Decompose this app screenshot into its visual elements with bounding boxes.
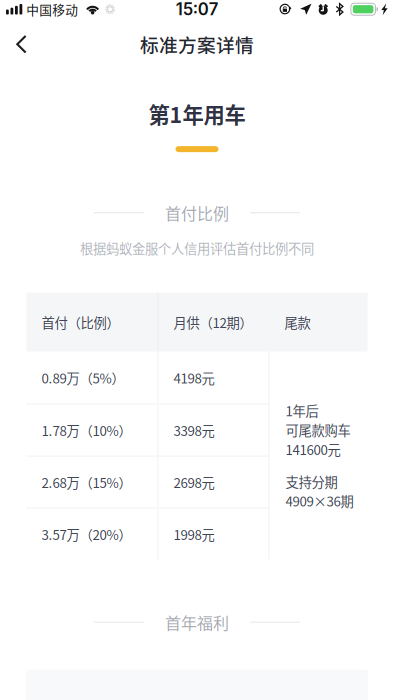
staticText: 首付（比例） [41, 312, 119, 332]
staticText: 1.78万（10%） [41, 420, 131, 440]
staticText: 支持分期 [285, 472, 337, 491]
staticText: 首付比例 [165, 201, 229, 224]
staticText: 根据蚂蚁金服个人信用评估首付比例不同 [80, 238, 314, 258]
staticText: 月供（12期） [173, 312, 252, 332]
staticText: 141600元 [285, 439, 340, 459]
staticText: 首年福利 [165, 611, 229, 634]
staticText: 4198元 [173, 368, 214, 387]
staticText: 15:07 [176, 0, 219, 19]
staticText: 3.57万（20%） [41, 524, 131, 544]
staticText: 标准方案详情 [140, 31, 254, 58]
staticText: 可尾款购车 [285, 420, 350, 439]
staticText: 2698元 [173, 472, 214, 492]
staticText: 3398元 [173, 420, 214, 440]
staticText: 尾款 [284, 312, 310, 332]
staticText: 2.68万（15%） [41, 472, 131, 492]
staticText: 第1年用车 [148, 98, 245, 129]
staticText: 中国移动 [26, 0, 78, 18]
staticText: 0.89万（5%） [41, 368, 124, 387]
staticText: 1998元 [173, 524, 214, 544]
staticText: 1年后 [285, 401, 318, 420]
button[interactable]: 返回 [0, 21, 41, 67]
staticText: 4909×36期 [285, 491, 353, 510]
